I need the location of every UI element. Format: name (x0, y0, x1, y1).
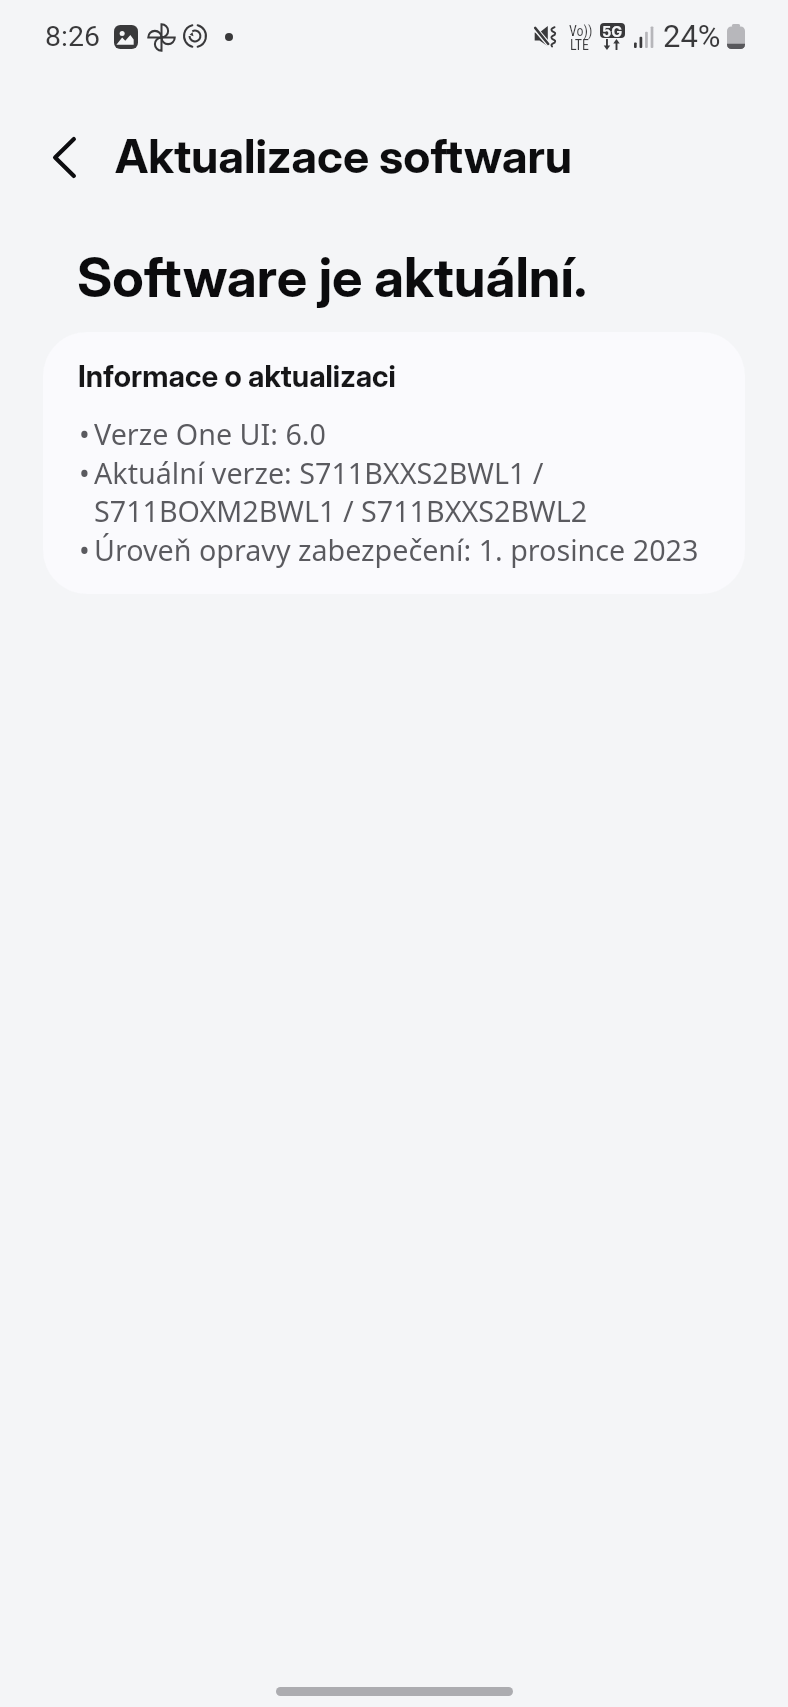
staticText: • (79, 415, 94, 453)
button[interactable]: Back (32, 125, 96, 189)
staticText: LTE (570, 37, 590, 53)
staticText: 5G (602, 23, 623, 38)
staticText: Vo)) (569, 23, 593, 39)
staticText: Aktualizace softwaru (115, 128, 573, 184)
staticText: Informace o aktualizaci (78, 358, 396, 394)
staticText: Aktuální verze: S711BXXS2BWL1 / S711BOXM… (94, 454, 588, 530)
staticText: Verze One UI: 6.0 (94, 415, 326, 453)
staticText: Úroveň opravy zabezpečení: 1. prosince 2… (94, 531, 699, 569)
staticText: 8:26 (45, 20, 100, 53)
staticText: • (79, 454, 94, 492)
button[interactable]: Informace o aktualizaci (43, 332, 745, 594)
staticText: • (79, 531, 94, 569)
staticText: Software je aktuální. (77, 244, 588, 310)
staticText: 24% (663, 18, 721, 54)
